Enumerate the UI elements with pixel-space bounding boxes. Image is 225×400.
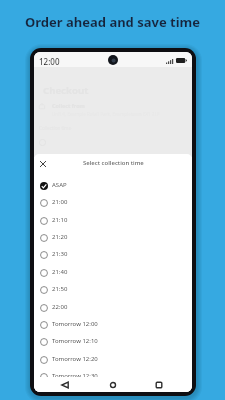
button[interactable]: Home bbox=[108, 380, 118, 390]
button[interactable]: 21:50 bbox=[34, 281, 192, 298]
staticText: Order ahead and save time bbox=[25, 13, 201, 31]
button[interactable]: 21:10 bbox=[34, 212, 192, 229]
button[interactable]: 21:40 bbox=[34, 264, 192, 281]
staticText: Select collection time bbox=[83, 159, 144, 167]
button[interactable]: ASAP bbox=[34, 177, 192, 194]
button[interactable]: 22:00 bbox=[34, 299, 192, 316]
button[interactable]: 21:30 bbox=[34, 246, 192, 263]
button[interactable]: Recents bbox=[154, 380, 164, 390]
staticText: 21:30 bbox=[52, 250, 68, 258]
staticText: 12:00 bbox=[39, 56, 60, 67]
staticText: 21:50 bbox=[52, 285, 68, 293]
button[interactable]: 21:00 bbox=[34, 194, 192, 211]
staticText: 21:20 bbox=[52, 233, 68, 241]
staticText: 21:00 bbox=[52, 198, 68, 206]
button[interactable]: Tomorrow 12:20 bbox=[34, 351, 192, 368]
staticText: ASAP bbox=[52, 181, 67, 189]
staticText: Tomorrow 12:30 bbox=[52, 372, 98, 380]
staticText: Tomorrow 12:00 bbox=[52, 320, 98, 328]
staticText: Tomorrow 12:20 bbox=[52, 355, 98, 363]
staticText: 21:10 bbox=[52, 216, 68, 224]
button[interactable]: 21:20 bbox=[34, 229, 192, 246]
button[interactable]: Tomorrow 12:10 bbox=[34, 333, 192, 350]
button[interactable]: Tomorrow 12:00 bbox=[34, 316, 192, 333]
button[interactable]: Tomorrow 12:30 bbox=[34, 368, 192, 385]
staticText: Tomorrow 12:10 bbox=[52, 337, 98, 345]
button[interactable]: Close bbox=[37, 158, 49, 170]
button[interactable]: Back bbox=[60, 380, 70, 390]
staticText: 21:40 bbox=[52, 268, 68, 276]
staticText: 22:00 bbox=[52, 303, 68, 311]
